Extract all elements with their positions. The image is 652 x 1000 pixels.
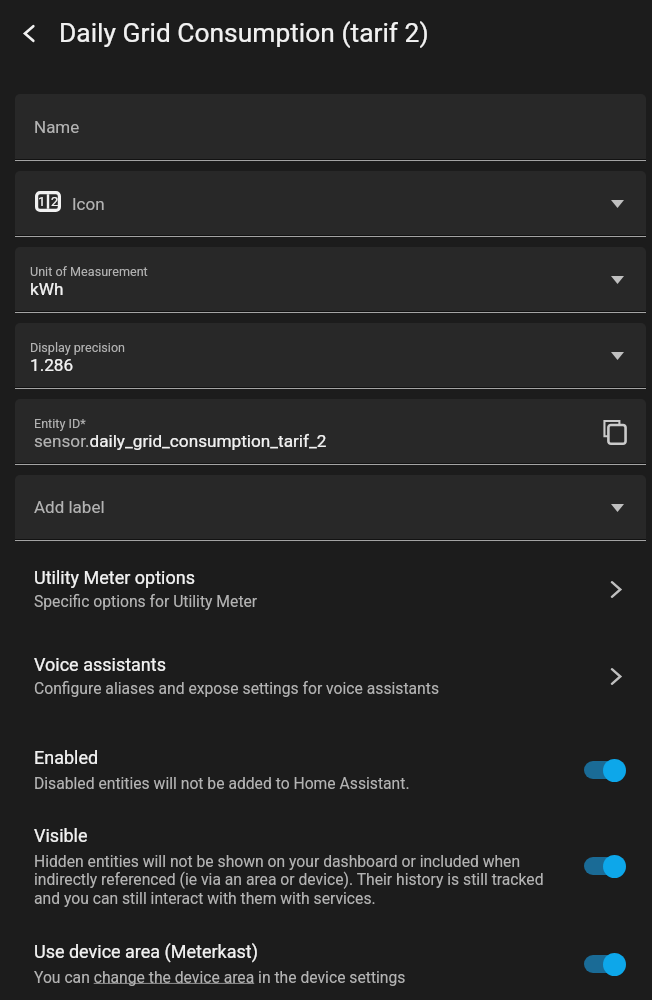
button[interactable]: Expand (595, 182, 639, 226)
staticText: You can change the device area in the de… (34, 968, 406, 986)
staticText: Specific options for Utility Meter (34, 592, 258, 610)
button[interactable]: Unit of Measurement (15, 247, 646, 311)
staticText: Unit of Measurement (30, 264, 148, 279)
staticText: Entity ID* (34, 416, 86, 431)
staticText: 1.286 (30, 355, 74, 375)
button[interactable]: Display precision (15, 323, 646, 387)
staticText: Enabled (34, 747, 99, 768)
staticText: Use device area (Meterkast) (34, 941, 258, 962)
staticText: sensor.daily_grid_consumption_tarif_2 (34, 431, 327, 451)
staticText: Icon (72, 194, 105, 214)
staticText: Voice assistants (34, 654, 166, 675)
button[interactable]: Copy entity id (593, 410, 637, 454)
button[interactable]: Voice assistants (0, 654, 652, 697)
button[interactable]: Expand (595, 486, 639, 530)
button[interactable]: Expand (595, 334, 639, 378)
other: Open (604, 577, 628, 601)
button[interactable]: Toggle (578, 947, 630, 981)
button[interactable]: Visible (0, 825, 652, 907)
button[interactable]: Add label (15, 475, 646, 539)
button[interactable]: Enabled (0, 747, 652, 792)
staticText: Daily Grid Consumption (tarif 2) (59, 18, 429, 49)
button[interactable]: Name (15, 94, 646, 159)
other: Open (604, 664, 628, 688)
button[interactable]: Utility Meter options (0, 567, 652, 610)
staticText: Display precision (30, 340, 126, 355)
button[interactable]: Back (1, 5, 57, 61)
staticText: kWh (30, 279, 64, 299)
staticText: 1 (38, 194, 46, 209)
button[interactable]: Expand (595, 258, 639, 302)
button[interactable]: Toggle (578, 849, 630, 883)
button[interactable]: Use device area (Meterkast) (0, 941, 652, 986)
staticText: Name (34, 117, 80, 137)
staticText: Visible (34, 825, 88, 846)
staticText: Hidden entities will not be shown on you… (34, 852, 564, 907)
staticText: Configure aliases and expose settings fo… (34, 679, 439, 697)
staticText: Add label (34, 497, 105, 517)
button[interactable]: Entity ID* (15, 399, 646, 463)
button[interactable]: 1 (15, 171, 646, 235)
staticText: Disabled entities will not be added to H… (34, 774, 410, 792)
staticText: 2 (51, 194, 59, 209)
staticText: Utility Meter options (34, 567, 195, 588)
button[interactable]: Toggle (578, 753, 630, 787)
